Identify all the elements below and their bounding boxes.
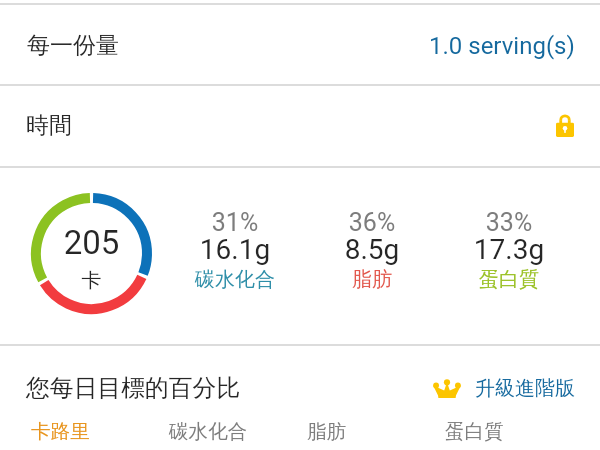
button[interactable]: 36%: [307, 195, 437, 295]
staticText: 卡: [31, 268, 152, 293]
staticText: 蛋白質: [445, 419, 504, 444]
staticText: 1.0 serving(s): [429, 32, 575, 60]
staticText: 205: [31, 223, 152, 262]
button[interactable]: 每一份量: [0, 5, 600, 86]
button[interactable]: Upgrade to premium: [433, 376, 575, 401]
button[interactable]: 碳水化合: [142, 409, 275, 450]
staticText: 36%: [307, 208, 437, 237]
other: Locked: [556, 114, 574, 137]
other: Upgrade to premium: [433, 379, 461, 398]
staticText: 脂肪: [307, 267, 437, 292]
staticText: 蛋白質: [444, 267, 574, 292]
staticText: 17.3g: [444, 233, 574, 266]
staticText: 每一份量: [27, 31, 119, 60]
button[interactable]: 時間: [0, 85, 600, 166]
button[interactable]: 脂肪: [261, 409, 393, 450]
staticText: 8.5g: [307, 233, 437, 266]
staticText: 卡路里: [31, 419, 90, 444]
staticText: 脂肪: [307, 419, 347, 444]
button[interactable]: 31%: [170, 195, 300, 295]
staticText: 碳水化合: [169, 419, 248, 444]
staticText: 33%: [444, 208, 574, 237]
staticText: 時間: [26, 111, 72, 140]
staticText: 碳水化合: [170, 267, 300, 292]
staticText: 升級進階版: [475, 376, 575, 401]
staticText: 您每日目標的百分比: [26, 373, 241, 403]
button[interactable]: 蛋白質: [400, 409, 548, 450]
staticText: 31%: [170, 208, 300, 237]
staticText: 16.1g: [170, 233, 300, 266]
button[interactable]: 33%: [444, 195, 574, 295]
button[interactable]: 卡路里: [0, 409, 125, 450]
